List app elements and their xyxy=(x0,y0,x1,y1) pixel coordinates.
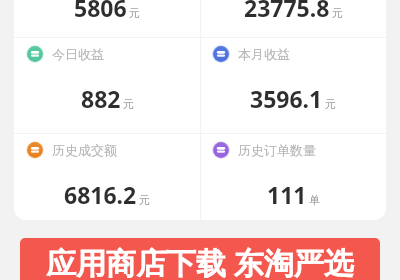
staticText: 元 xyxy=(123,97,134,111)
staticText: 111 xyxy=(267,179,307,210)
staticText: 历史订单数量 xyxy=(238,142,316,158)
button[interactable]: 应用商店下载 东淘严选 xyxy=(20,238,380,280)
staticText: 元 xyxy=(325,97,336,111)
staticText: 元 xyxy=(129,6,140,20)
staticText: 历史成交额 xyxy=(52,142,117,158)
other: History orders xyxy=(212,141,230,159)
button[interactable]: History orders xyxy=(200,133,386,220)
staticText: 5806 xyxy=(74,0,127,23)
staticText: 882 xyxy=(81,83,121,114)
staticText: 元 xyxy=(139,193,150,207)
staticText: 本月收益 xyxy=(238,46,290,62)
other: Month earnings xyxy=(212,45,230,63)
button[interactable]: 23775.8 xyxy=(200,0,386,37)
staticText: 3596.1 xyxy=(250,83,323,114)
staticText: 今日收益 xyxy=(52,46,104,62)
other: Today earnings xyxy=(26,45,44,63)
button[interactable]: History amount xyxy=(14,133,200,220)
staticText: 单 xyxy=(309,193,320,207)
staticText: 6816.2 xyxy=(64,179,137,210)
staticText: 应用商店下载 东淘严选 xyxy=(46,242,354,280)
other: History amount xyxy=(26,141,44,159)
staticText: 元 xyxy=(332,6,343,20)
button[interactable]: Today earnings xyxy=(14,37,200,133)
button[interactable]: Month earnings xyxy=(200,37,386,133)
staticText: 23775.8 xyxy=(244,0,330,23)
button[interactable]: 5806 xyxy=(14,0,200,37)
